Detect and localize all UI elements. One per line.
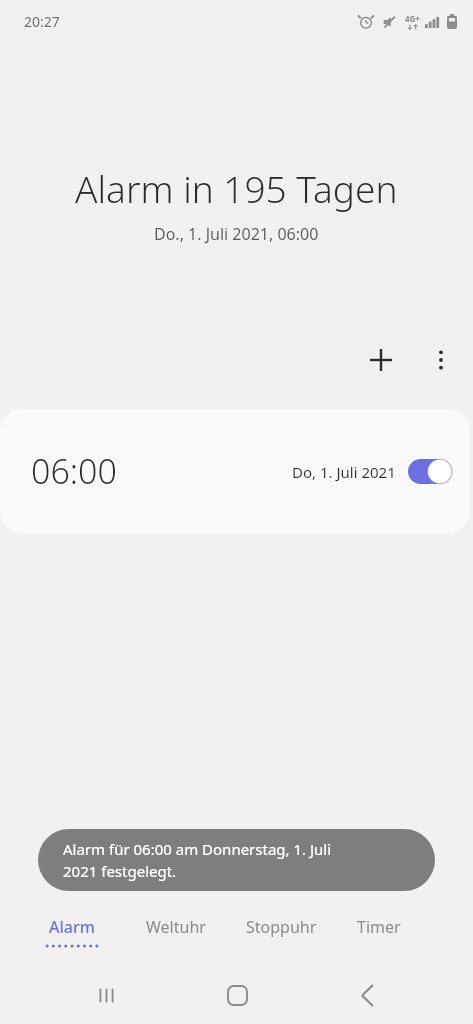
button[interactable]: Stoppuhr bbox=[246, 916, 317, 938]
button[interactable]: Alarm aktiviert bbox=[408, 459, 452, 484]
staticText: 06:00 bbox=[31, 448, 117, 494]
button[interactable]: Alarm bbox=[44, 916, 100, 948]
staticText: Weltuhr bbox=[146, 916, 206, 938]
staticText: Do., 1. Juli 2021, 06:00 bbox=[154, 223, 319, 245]
button[interactable]: 06:00 bbox=[0, 409, 470, 533]
staticText: Alarm bbox=[49, 916, 95, 938]
staticText: Stoppuhr bbox=[246, 916, 317, 938]
staticText: Alarm für 06:00 am Donnerstag, 1. Juli 2… bbox=[63, 839, 332, 882]
button[interactable]: Startbildschirm bbox=[213, 971, 261, 1019]
staticText: 20:27 bbox=[24, 12, 60, 31]
button[interactable]: Alarm hinzufügen bbox=[357, 336, 405, 384]
button[interactable]: Timer bbox=[357, 916, 401, 938]
button[interactable]: Weitere Optionen bbox=[419, 338, 463, 382]
button[interactable]: Weltuhr bbox=[146, 916, 206, 938]
button[interactable]: Letzte Apps bbox=[82, 971, 130, 1019]
staticText: 4G+ bbox=[405, 13, 420, 24]
staticText: Timer bbox=[357, 916, 401, 938]
staticText: Do, 1. Juli 2021 bbox=[292, 462, 396, 482]
staticText: Alarm in 195 Tagen bbox=[75, 163, 398, 213]
button[interactable]: Zurück bbox=[343, 971, 391, 1019]
